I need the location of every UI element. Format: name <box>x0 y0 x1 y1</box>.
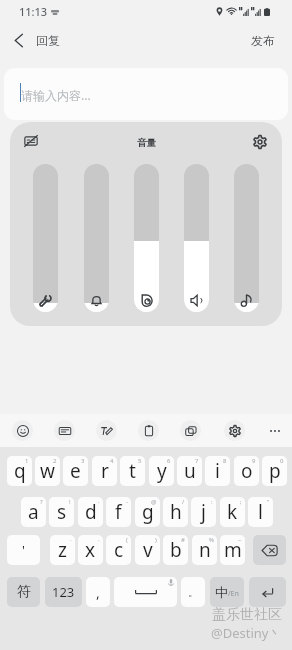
button[interactable]: w <box>35 456 60 486</box>
staticText: ! <box>69 498 71 506</box>
button[interactable]: r <box>92 456 117 486</box>
staticText: u <box>184 458 196 484</box>
staticText: 请输入内容... <box>21 87 91 103</box>
button[interactable]: Mute <box>20 130 42 152</box>
staticText: ( <box>126 536 128 544</box>
staticText: 11:13 <box>19 4 48 19</box>
button[interactable]: p <box>262 456 287 486</box>
staticText: l <box>258 499 263 525</box>
staticText: z <box>58 537 67 563</box>
button[interactable]: Clipboard <box>138 420 159 441</box>
button[interactable]: m <box>220 535 245 565</box>
staticText: : <box>211 498 213 506</box>
button[interactable]: d <box>78 497 103 527</box>
button[interactable]: , <box>86 577 110 607</box>
button[interactable]: v <box>135 535 160 565</box>
button[interactable]: 回复 <box>36 33 60 48</box>
button[interactable]: c <box>106 535 131 565</box>
button[interactable]: Notification <box>84 164 109 312</box>
button[interactable]: z <box>50 535 75 565</box>
button[interactable]: n <box>192 535 217 565</box>
button[interactable]: 中 <box>210 577 244 607</box>
staticText: r <box>101 458 109 484</box>
button[interactable]: u <box>177 456 202 486</box>
button[interactable]: Emoji <box>12 420 33 441</box>
staticText: - <box>126 498 128 506</box>
button[interactable]: y <box>149 456 174 486</box>
button[interactable]: Volume settings <box>249 131 271 153</box>
button[interactable]: Settings <box>224 420 245 441</box>
button[interactable]: Keyboard layout <box>54 420 75 441</box>
button[interactable]: Back <box>6 28 30 52</box>
button[interactable]: k <box>220 497 245 527</box>
button[interactable]: a <box>21 497 46 527</box>
staticText: /En <box>228 589 239 599</box>
staticText: x <box>85 537 96 563</box>
staticText: n <box>199 537 211 563</box>
staticText: , <box>96 583 100 602</box>
button[interactable]: Ring <box>184 164 209 312</box>
button[interactable]: Handwriting <box>96 420 117 441</box>
button[interactable]: Space <box>114 577 177 607</box>
staticText: y <box>157 458 167 484</box>
staticText: 2 <box>53 457 57 465</box>
staticText: " <box>267 498 270 506</box>
staticText: p <box>269 458 281 484</box>
staticText: 盖乐世社区 <box>212 606 282 624</box>
button[interactable]: Media <box>134 164 159 312</box>
button[interactable]: q <box>7 456 32 486</box>
button[interactable]: t <box>120 456 145 486</box>
button[interactable]: g <box>135 497 160 527</box>
button[interactable]: l <box>248 497 273 527</box>
staticText: g <box>142 499 154 525</box>
button[interactable]: Enter <box>249 577 286 607</box>
staticText: 发布 <box>251 33 275 48</box>
button[interactable]: b <box>163 535 188 565</box>
button[interactable]: o <box>234 456 259 486</box>
staticText: k <box>227 499 238 525</box>
staticText: ; <box>240 498 242 506</box>
button[interactable]: s <box>49 497 74 527</box>
staticText: % <box>209 536 214 544</box>
staticText: 1 <box>25 457 29 465</box>
button[interactable]: Backspace <box>253 535 286 565</box>
button[interactable]: 发布 <box>251 33 275 48</box>
button[interactable]: j <box>191 497 216 527</box>
staticText: / <box>182 498 185 506</box>
staticText: d <box>85 499 97 525</box>
staticText: o <box>241 458 253 484</box>
staticText: h <box>170 499 182 525</box>
staticText: · <box>70 536 72 544</box>
button[interactable]: Translate <box>180 420 201 441</box>
staticText: e <box>70 458 81 484</box>
staticText: v <box>143 537 153 563</box>
button[interactable]: ' <box>7 535 40 565</box>
staticText: t <box>129 458 136 484</box>
button[interactable]: System <box>33 164 58 312</box>
button[interactable]: Music <box>234 164 259 312</box>
button[interactable]: 请输入内容... <box>4 68 288 120</box>
staticText: 6 <box>167 457 171 465</box>
staticText: j <box>201 499 206 525</box>
staticText: · <box>98 536 100 544</box>
staticText: @ <box>151 498 157 506</box>
button[interactable]: i <box>205 456 230 486</box>
staticText: 8 <box>223 457 227 465</box>
staticText: f <box>115 499 122 525</box>
button[interactable]: More <box>264 420 285 441</box>
staticText: ) <box>155 536 157 544</box>
staticText: ' <box>22 541 25 559</box>
button[interactable]: h <box>163 497 188 527</box>
staticText: w <box>40 458 55 484</box>
button[interactable]: 符 <box>7 577 40 607</box>
staticText: 中 <box>215 584 228 600</box>
button[interactable]: e <box>63 456 88 486</box>
staticText: 7 <box>195 457 199 465</box>
button[interactable]: 。 <box>181 577 205 607</box>
staticText: s <box>57 499 67 525</box>
button[interactable]: 123 <box>45 577 82 607</box>
staticText: 123 <box>52 583 75 601</box>
staticText: a <box>28 499 39 525</box>
button[interactable]: f <box>106 497 131 527</box>
button[interactable]: x <box>78 535 103 565</box>
